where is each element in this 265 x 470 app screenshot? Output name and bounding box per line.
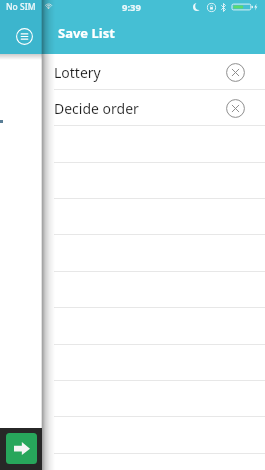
staticText: 9:39 bbox=[122, 1, 141, 14]
button[interactable]: Delete Lottery bbox=[226, 63, 245, 82]
staticText: No SIM bbox=[6, 1, 36, 13]
button[interactable]: Delete Decide order bbox=[226, 99, 245, 118]
button[interactable]: Decide order bbox=[42, 90, 265, 126]
button[interactable]: Next bbox=[6, 433, 37, 464]
button[interactable]: Menu bbox=[16, 28, 33, 45]
staticText: Decide order bbox=[54, 99, 226, 118]
staticText: Save List bbox=[58, 24, 115, 42]
button[interactable]: Lottery bbox=[42, 54, 265, 90]
staticText: Lottery bbox=[54, 63, 226, 82]
